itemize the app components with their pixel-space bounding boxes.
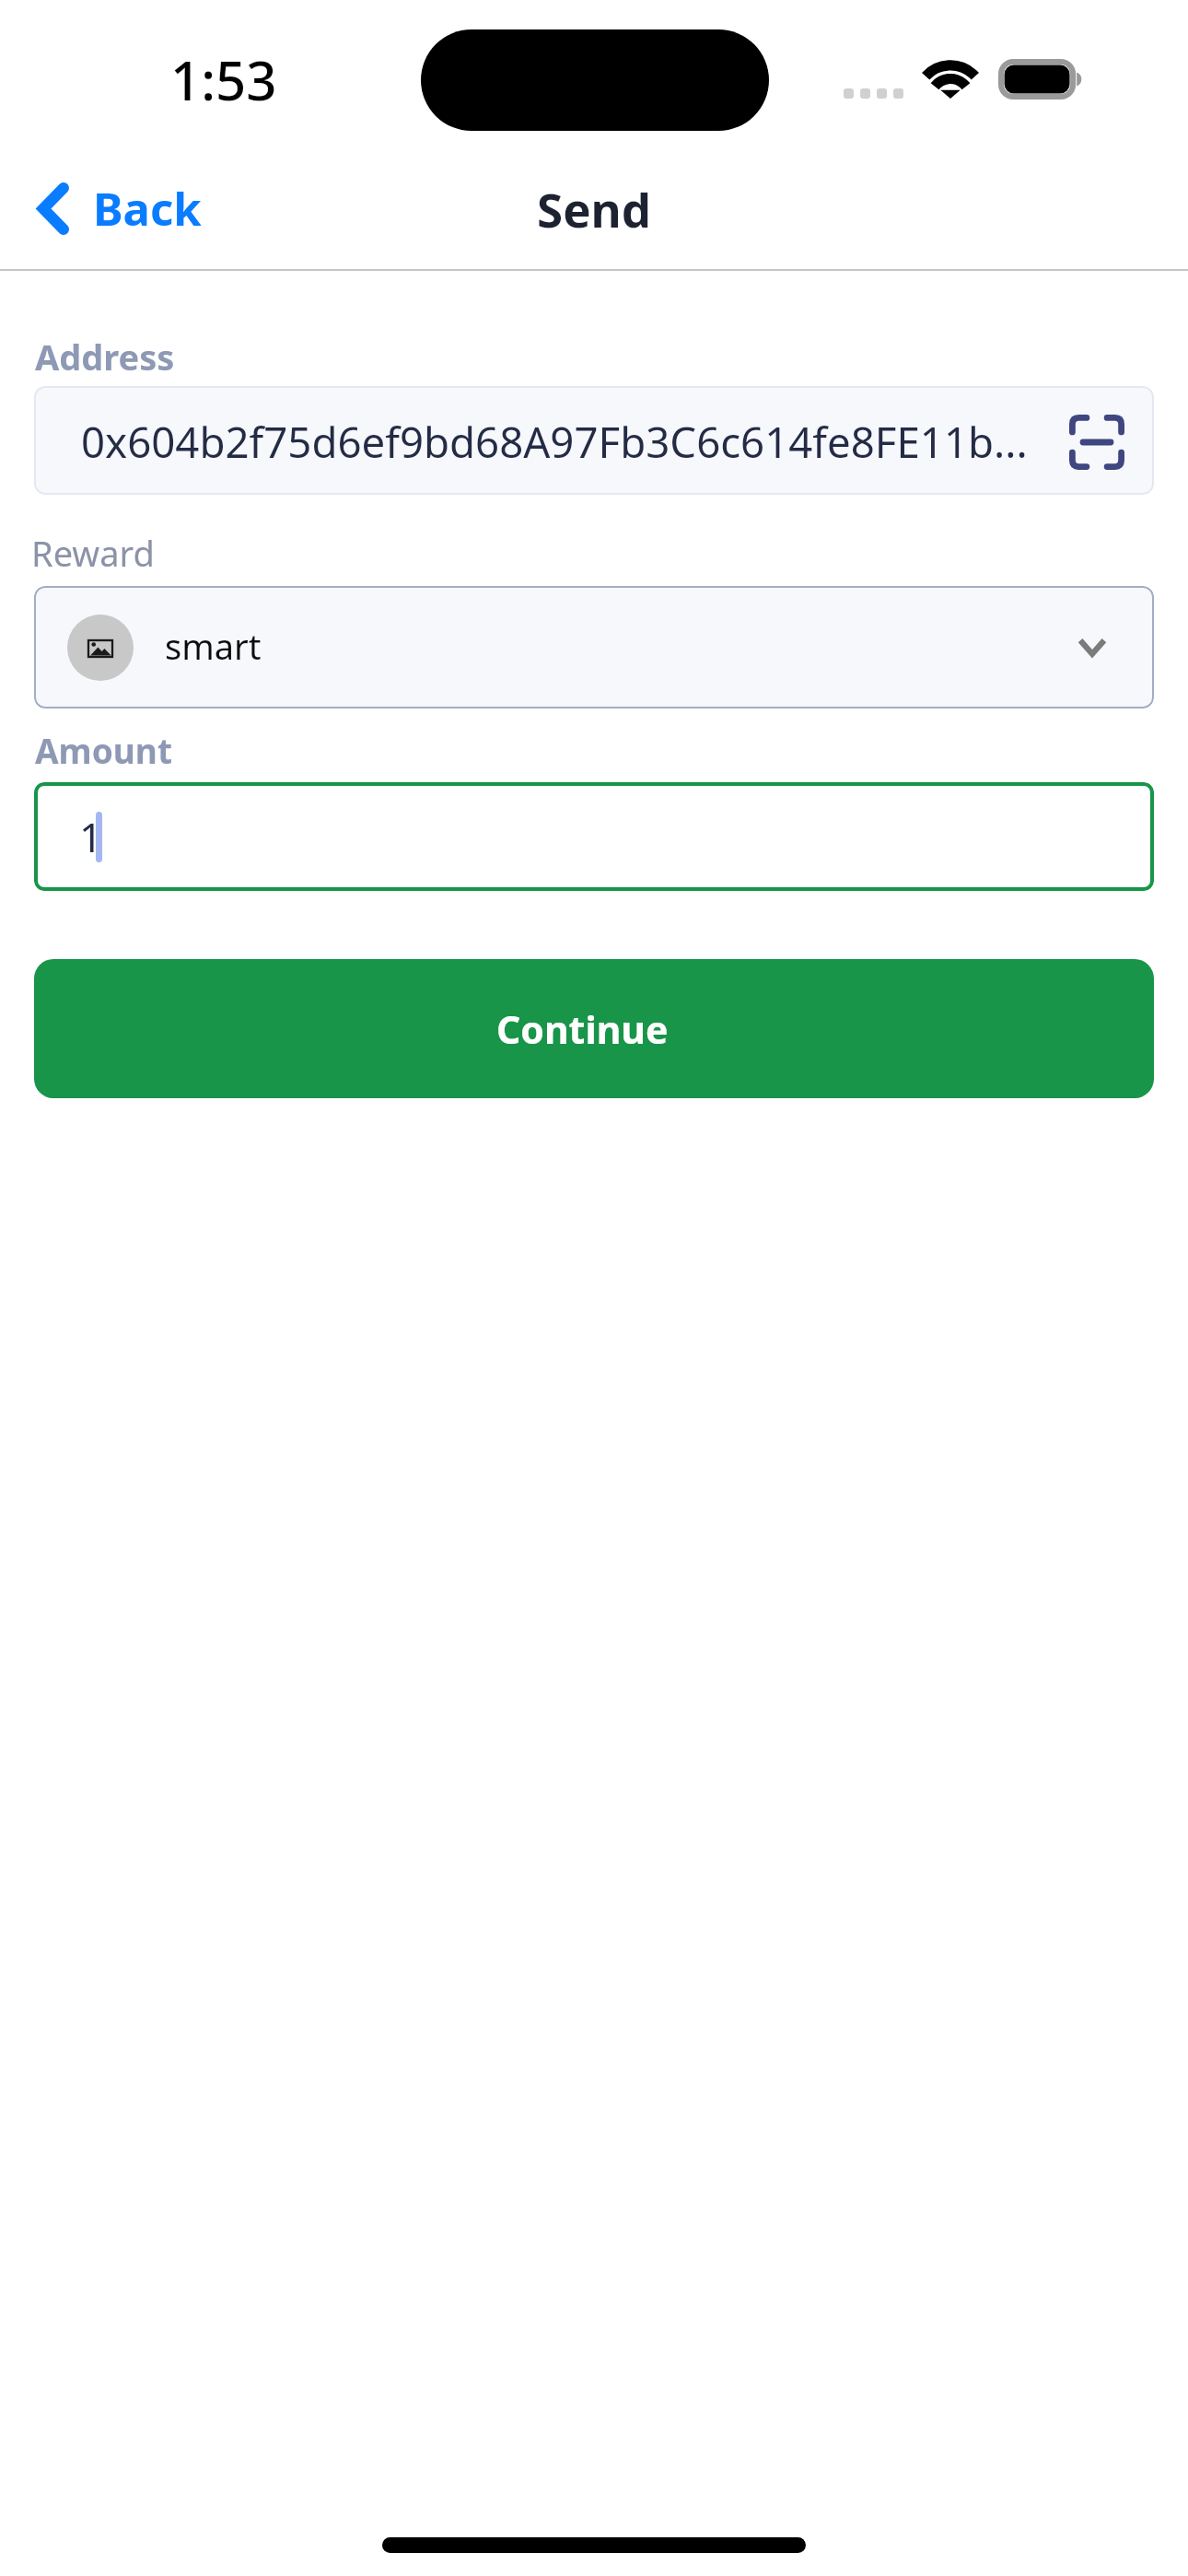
- staticText: smart: [165, 622, 262, 670]
- staticText: Back: [93, 178, 202, 240]
- staticText: Continue: [496, 1003, 669, 1055]
- button[interactable]: Scan QR code: [1069, 415, 1124, 470]
- staticText: Reward: [31, 529, 155, 577]
- button[interactable]: 0x604b2f75d6ef9bd68A97Fb3C6c614fe8FE11b.…: [34, 386, 1154, 495]
- staticText: Amount: [35, 727, 172, 773]
- staticText: Address: [35, 333, 175, 381]
- button[interactable]: smart: [34, 586, 1154, 708]
- other: Expand reward list: [1077, 638, 1107, 657]
- staticText: 1:53: [170, 43, 277, 116]
- button[interactable]: 1: [34, 782, 1154, 891]
- staticText: 1: [79, 809, 103, 864]
- button[interactable]: Back: [27, 169, 213, 248]
- staticText: Send: [0, 177, 1188, 240]
- button[interactable]: Continue: [34, 959, 1154, 1098]
- staticText: 0x604b2f75d6ef9bd68A97Fb3C6c614fe8FE11b.…: [81, 413, 1028, 470]
